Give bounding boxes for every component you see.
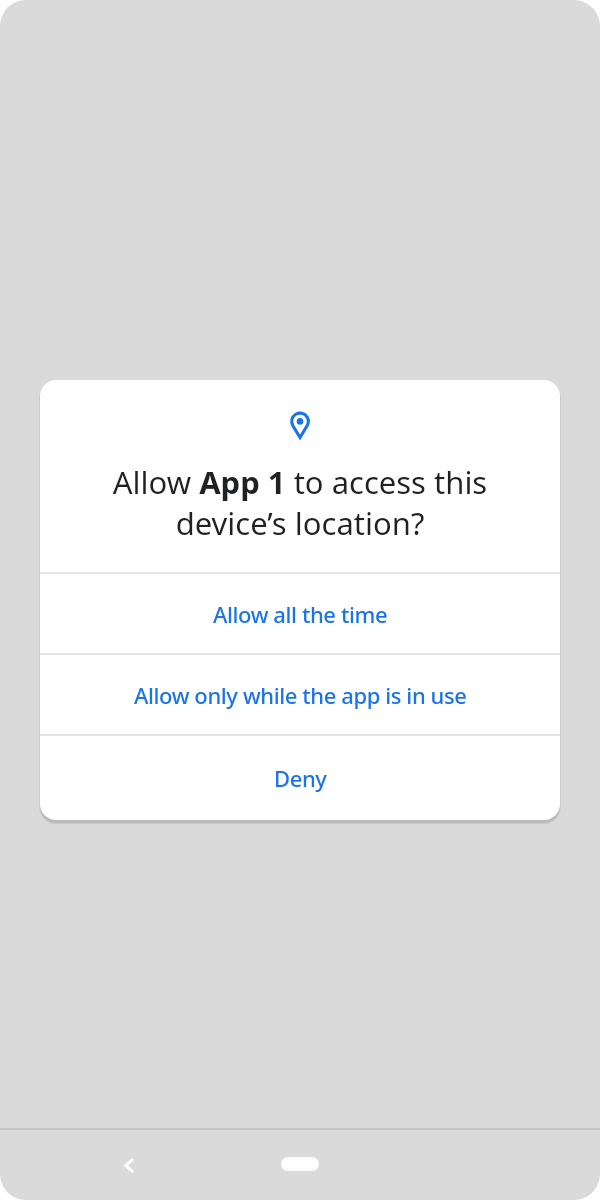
staticText: Allow only while the app is in use	[134, 680, 467, 710]
staticText: Deny	[274, 763, 327, 793]
button[interactable]: Allow all the time	[40, 574, 560, 653]
button[interactable]: Allow only while the app is in use	[40, 655, 560, 734]
button[interactable]	[105, 1141, 153, 1189]
staticText: Allow all the time	[213, 599, 388, 629]
button[interactable]: Deny	[40, 736, 560, 820]
button[interactable]	[281, 1157, 319, 1171]
staticText: Allow App 1 to access this device’s loca…	[40, 461, 560, 544]
